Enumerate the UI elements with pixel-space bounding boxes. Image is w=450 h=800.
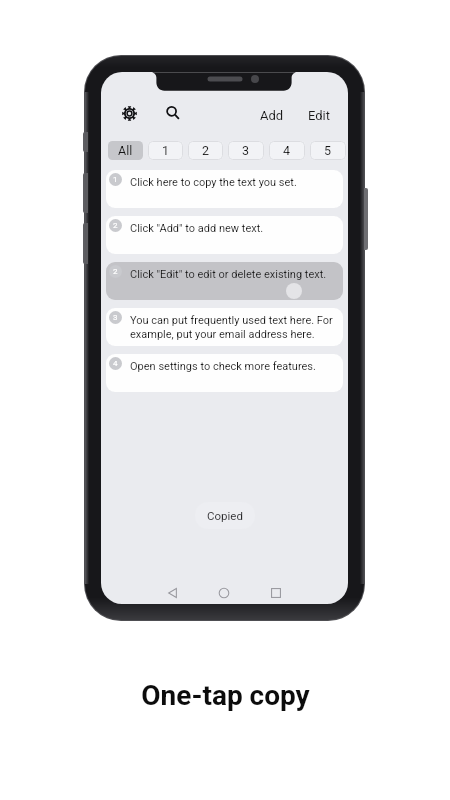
button[interactable]: 1 <box>148 141 183 160</box>
staticText: 1 <box>162 143 170 158</box>
button[interactable]: 4 <box>269 141 305 160</box>
button[interactable]: Add <box>256 105 288 125</box>
staticText: 4 <box>283 143 291 158</box>
staticText: 2 <box>113 267 118 276</box>
staticText: Add <box>260 108 284 123</box>
button[interactable]: 2 <box>106 262 343 300</box>
staticText: 5 <box>324 143 332 158</box>
staticText: 2 <box>113 221 118 230</box>
button[interactable]: 1 <box>106 170 343 208</box>
button[interactable]: 5 <box>310 141 346 160</box>
staticText: Click here to copy the text you set. <box>130 176 297 189</box>
button[interactable]: All <box>108 141 143 160</box>
button[interactable]: 3 <box>106 308 343 346</box>
staticText: All <box>118 143 133 158</box>
button[interactable]: Back <box>161 581 185 604</box>
button[interactable]: Settings <box>117 101 141 125</box>
staticText: 1 <box>113 175 118 184</box>
button[interactable]: Edit <box>303 105 335 125</box>
staticText: Open settings to check more features. <box>130 360 316 373</box>
staticText: Click "Edit" to edit or delete existing … <box>130 268 327 281</box>
staticText: 4 <box>113 359 118 368</box>
staticText: Edit <box>308 108 331 123</box>
staticText: One-tap copy <box>141 679 310 712</box>
staticText: 3 <box>113 313 118 322</box>
button[interactable]: Home <box>212 581 236 604</box>
staticText: 2 <box>202 143 210 158</box>
button[interactable]: Recents <box>264 581 288 604</box>
staticText: Click "Add" to add new text. <box>130 222 264 235</box>
button[interactable]: Search <box>161 101 185 125</box>
button[interactable]: 4 <box>106 354 343 392</box>
staticText: 3 <box>242 143 250 158</box>
button[interactable]: 2 <box>188 141 223 160</box>
button[interactable]: 2 <box>106 216 343 254</box>
staticText: You can put frequently used text here. F… <box>130 314 339 341</box>
staticText: Copied <box>207 509 243 522</box>
button[interactable]: 3 <box>228 141 264 160</box>
